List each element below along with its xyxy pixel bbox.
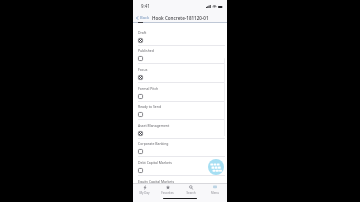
- staticText: 9:41: [141, 3, 150, 9]
- staticText: Draft: [138, 30, 147, 35]
- staticText: Equity Capital Markets: [138, 179, 175, 184]
- staticText: Menu: [211, 191, 219, 195]
- button[interactable]: Debt Capital Markets: [133, 157, 227, 176]
- staticText: Ready to Send: [138, 104, 162, 109]
- staticText: Hook Concrete-181120-01: [152, 15, 209, 21]
- staticText: Back: [140, 15, 150, 21]
- button[interactable]: My Day: [133, 184, 156, 195]
- button[interactable]: Ready to Send: [133, 101, 227, 120]
- staticText: Favorites: [161, 191, 174, 195]
- staticText: Formal Pitch: [138, 86, 159, 91]
- button[interactable]: Published: [133, 45, 227, 64]
- staticText: My Day: [139, 191, 150, 195]
- staticText: Focus: [138, 67, 148, 72]
- staticText: Published: [138, 48, 154, 53]
- staticText: Asset Management: [138, 123, 170, 128]
- button[interactable]: Menu: [203, 184, 227, 195]
- button[interactable]: Apps grid: [208, 159, 224, 175]
- button[interactable]: Asset Management: [133, 120, 227, 139]
- button[interactable]: Equity Capital Markets: [133, 176, 227, 195]
- button[interactable]: Draft: [133, 27, 227, 46]
- staticText: Debt Capital Markets: [138, 160, 172, 165]
- button[interactable]: Favorites: [156, 184, 179, 195]
- button[interactable]: Back: [133, 14, 152, 22]
- button[interactable]: Focus: [133, 64, 227, 83]
- button[interactable]: Search: [179, 184, 203, 195]
- button[interactable]: Formal Pitch: [133, 83, 227, 102]
- staticText: Search: [186, 191, 196, 195]
- staticText: Corporate Banking: [138, 141, 169, 146]
- button[interactable]: Corporate Banking: [133, 138, 227, 157]
